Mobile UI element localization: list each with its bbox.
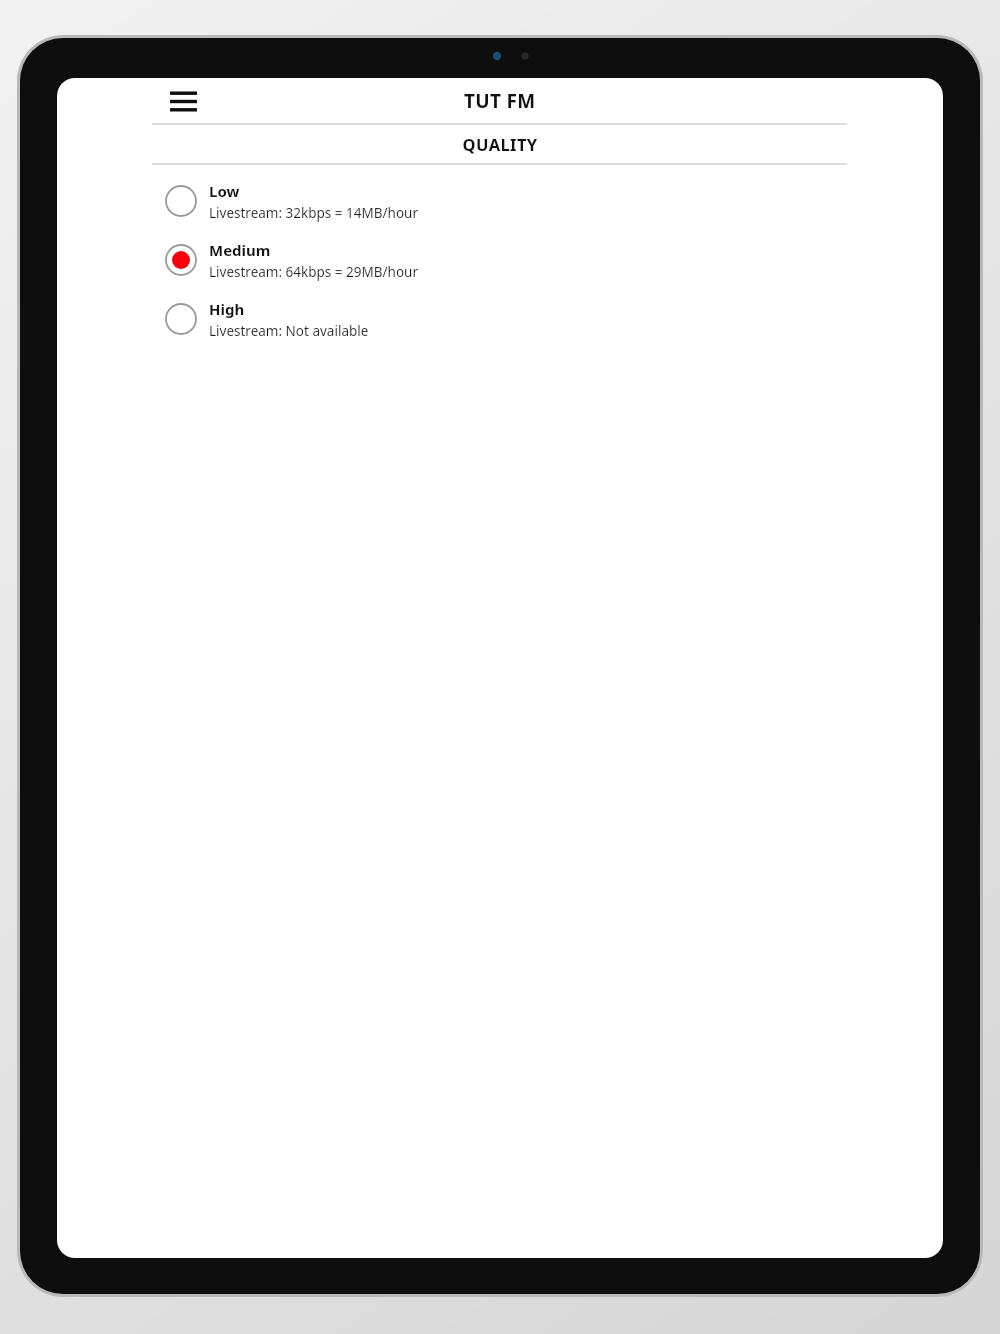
staticText: Livestream: 32kbps = 14MB/hour <box>209 204 418 222</box>
staticText: Livestream: Not available <box>209 322 369 340</box>
staticText: QUALITY <box>462 133 538 155</box>
staticText: TUT FM <box>464 88 536 114</box>
button[interactable]: Open navigation menu <box>161 79 205 123</box>
staticText: Low <box>209 181 240 201</box>
button[interactable]: Medium <box>57 230 943 289</box>
button[interactable]: High <box>57 289 943 348</box>
staticText: Medium <box>209 240 271 260</box>
staticText: Livestream: 64kbps = 29MB/hour <box>209 263 418 281</box>
staticText: High <box>209 299 245 319</box>
button[interactable]: Low <box>57 171 943 230</box>
